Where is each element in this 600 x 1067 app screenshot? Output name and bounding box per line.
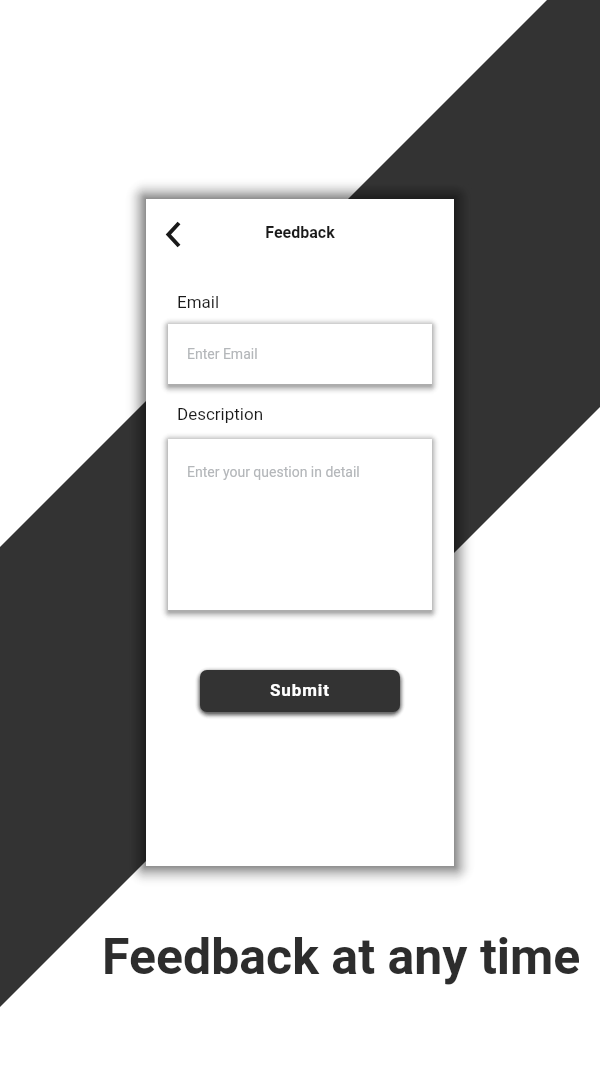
- staticText: Submit: [270, 680, 330, 700]
- staticText: Email: [177, 292, 220, 312]
- button[interactable]: Enter your question in detail: [168, 439, 432, 610]
- button[interactable]: Submit: [200, 670, 400, 712]
- button[interactable]: Back: [149, 210, 197, 258]
- staticText: Description: [177, 404, 264, 424]
- staticText: Enter your question in detail: [187, 464, 360, 480]
- staticText: Feedback at any time: [102, 928, 581, 987]
- staticText: Enter Email: [187, 346, 258, 362]
- button[interactable]: Enter Email: [168, 324, 432, 384]
- staticText: Feedback: [146, 223, 454, 242]
